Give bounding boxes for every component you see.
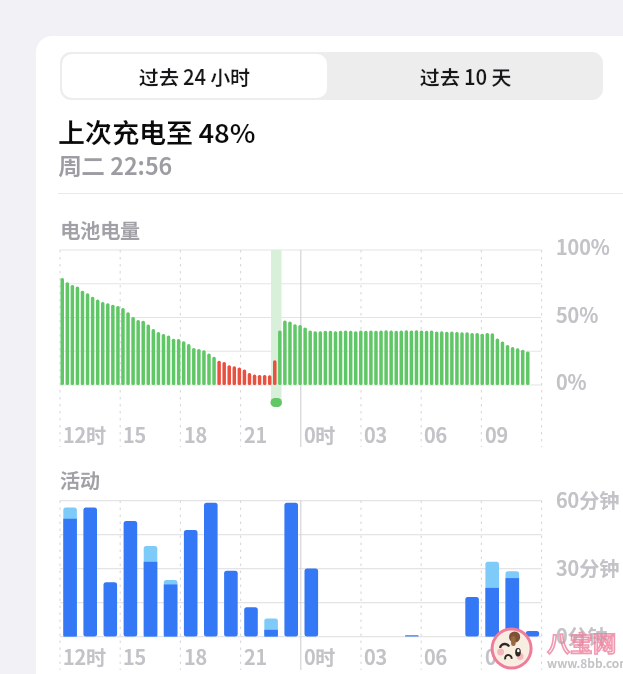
button[interactable]: 过去 10 天 xyxy=(330,54,601,98)
staticText: 06 xyxy=(424,642,448,671)
staticText: 0% xyxy=(556,367,587,396)
staticText: 八宝网 xyxy=(547,625,616,658)
staticText: 活动 xyxy=(60,465,100,494)
staticText: 06 xyxy=(424,420,448,449)
staticText: 03 xyxy=(364,642,388,671)
staticText: 12时 xyxy=(63,420,107,449)
staticText: www.8bb.com xyxy=(547,654,623,671)
staticText: 过去 24 小时 xyxy=(139,62,251,91)
staticText: 上次充电至 48% xyxy=(58,112,256,151)
staticText: 过去 10 天 xyxy=(420,62,512,91)
staticText: 18 xyxy=(184,420,208,449)
staticText: 50% xyxy=(556,300,599,329)
staticText: 18 xyxy=(184,642,208,671)
staticText: 03 xyxy=(364,420,388,449)
staticText: 八宝网 xyxy=(547,625,616,658)
staticText: 0时 xyxy=(304,642,336,671)
staticText: 电池电量 xyxy=(60,215,140,244)
staticText: 60分钟 xyxy=(556,485,620,514)
staticText: 0时 xyxy=(304,420,336,449)
staticText: 30分钟 xyxy=(556,553,620,582)
staticText: 21 xyxy=(244,642,268,671)
staticText: 09 xyxy=(485,420,509,449)
button[interactable]: 过去 24 小时 xyxy=(62,54,327,98)
staticText: 12时 xyxy=(63,642,107,671)
staticText: 0分钟 xyxy=(556,621,608,650)
staticText: 21 xyxy=(244,420,268,449)
staticText: 15 xyxy=(123,642,147,671)
staticText: 周二 22:56 xyxy=(58,148,173,182)
staticText: 100% xyxy=(556,232,610,261)
staticText: 09 xyxy=(485,642,509,671)
staticText: 15 xyxy=(123,420,147,449)
